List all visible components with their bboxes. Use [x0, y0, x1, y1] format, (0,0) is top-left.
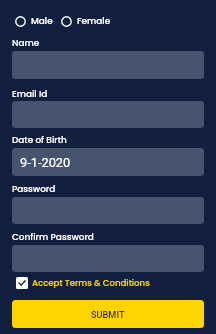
button[interactable]: Female [61, 15, 111, 27]
button[interactable]: 9-1-2020 [12, 148, 204, 176]
staticText: Date of Birth [12, 134, 67, 146]
staticText: SUBMIT [91, 309, 125, 320]
staticText: Email Id [12, 88, 48, 100]
staticText: Name [12, 37, 40, 49]
staticText: Accept Terms & Conditions [32, 277, 150, 289]
button[interactable]: Male [15, 15, 53, 27]
staticText: Female [77, 15, 111, 27]
staticText: Confirm Password [12, 231, 94, 243]
staticText: Password [12, 183, 56, 195]
button[interactable]: Accept Terms & Conditions [16, 277, 150, 289]
button[interactable]: SUBMIT [12, 300, 204, 328]
staticText: Male [31, 15, 53, 27]
staticText: 9-1-2020 [20, 155, 71, 170]
